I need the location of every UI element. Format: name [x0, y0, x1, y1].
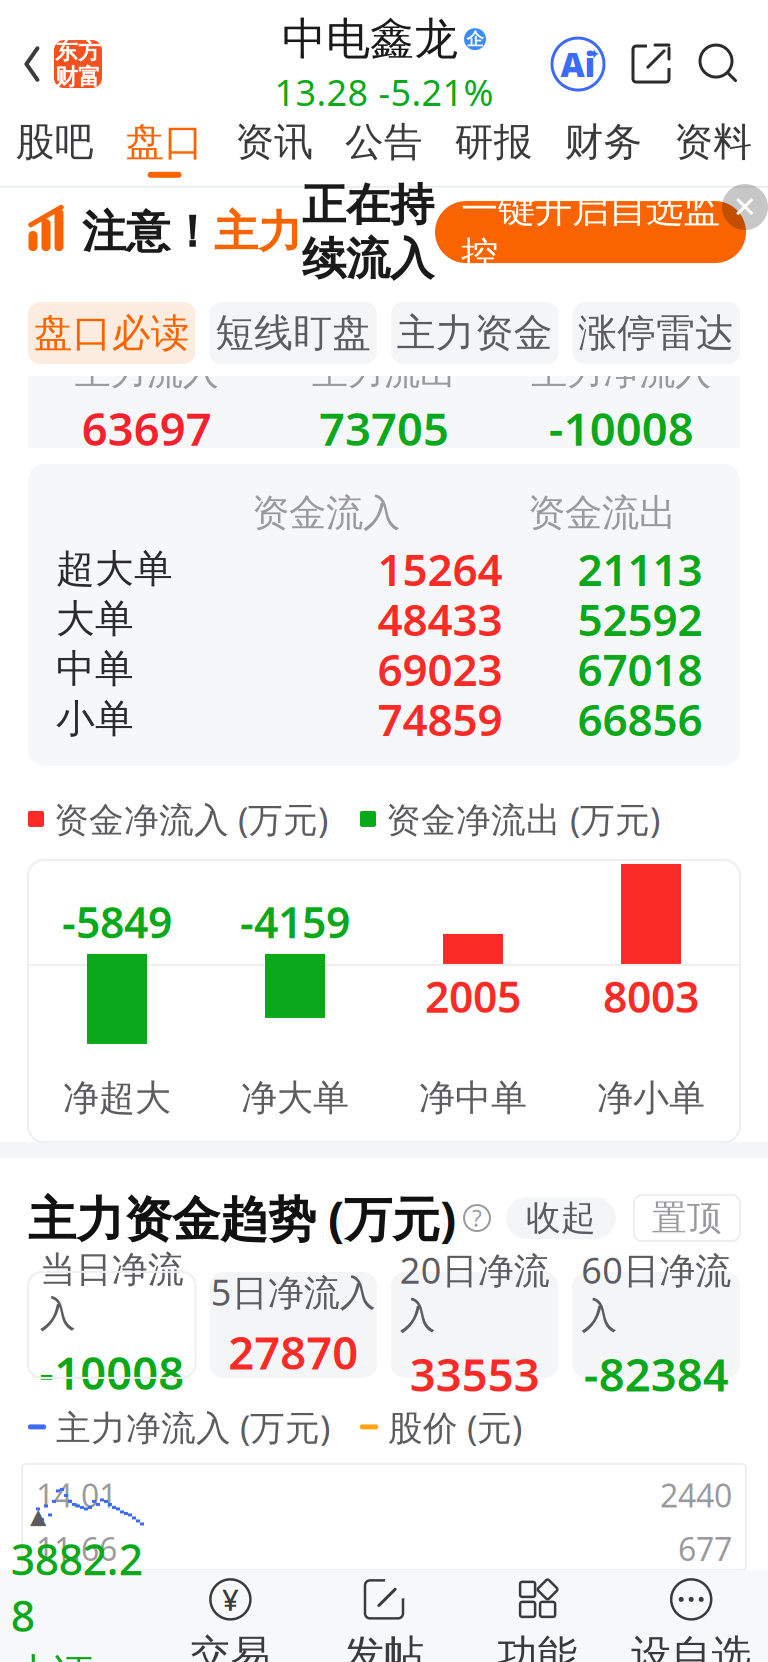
button[interactable]: 财务	[549, 104, 658, 186]
staticText: 27870	[228, 1322, 358, 1382]
staticText: 48433	[377, 590, 502, 648]
staticText: 公告	[345, 118, 423, 166]
staticText: Ai	[560, 42, 595, 86]
staticText: 主力资金趋势 (万元)	[28, 1186, 456, 1250]
staticText: 注意！	[82, 205, 214, 259]
button[interactable]: 说明	[456, 1205, 490, 1231]
staticText: 8003	[603, 968, 699, 1025]
button[interactable]: 设自选	[614, 1576, 768, 1662]
button[interactable]: 当日净流入	[28, 1272, 195, 1378]
staticText: 一键开启自选监控	[461, 186, 720, 278]
button[interactable]: 收起	[506, 1197, 616, 1239]
button[interactable]: 涨停雷达	[572, 302, 740, 364]
staticText: 资金净流出 (万元)	[386, 796, 660, 842]
staticText: 功能	[498, 1630, 578, 1662]
staticText: 14.01	[36, 1474, 117, 1516]
button[interactable]: 5日净流入	[209, 1272, 377, 1378]
staticText: 涨停雷达	[578, 309, 734, 357]
button[interactable]: 返回	[0, 30, 102, 98]
staticText: ¥	[222, 1580, 239, 1619]
staticText: 东方	[55, 37, 101, 65]
button[interactable]: 发帖	[307, 1576, 461, 1662]
staticText: 发帖	[344, 1630, 424, 1662]
staticText: 5日净流入	[211, 1268, 376, 1316]
staticText: 中单	[56, 645, 134, 693]
staticText: 正在持续流入	[302, 178, 434, 286]
button[interactable]: 研报	[439, 104, 549, 186]
button[interactable]: 20日净流入	[391, 1272, 558, 1378]
staticText: -5.21%	[378, 68, 493, 116]
button[interactable]: 分享	[628, 41, 674, 87]
button[interactable]: AI 助手	[550, 36, 606, 92]
button[interactable]: 60日净流入	[572, 1272, 740, 1378]
staticText: 74859	[377, 690, 502, 748]
staticText: 66856	[577, 690, 702, 748]
staticText: 置顶	[652, 1197, 722, 1239]
staticText: ✕	[732, 190, 757, 224]
staticText: 净小单	[597, 1076, 705, 1120]
staticText: 中电鑫龙	[282, 12, 458, 66]
staticText: 短线盯盘	[215, 309, 371, 357]
staticText: 当日净流入	[40, 1248, 184, 1336]
staticText: 超大单	[56, 545, 173, 593]
button[interactable]: 公告	[329, 104, 439, 186]
staticText: 资金流入	[252, 490, 400, 536]
staticText: 60日净流入	[581, 1246, 731, 1338]
staticText: 资料	[674, 118, 752, 166]
button[interactable]: 搜索	[696, 41, 742, 87]
staticText: 设自选	[631, 1630, 751, 1662]
staticText: 盘口必读	[34, 309, 190, 357]
button[interactable]: ¥	[154, 1576, 307, 1662]
staticText: 73705	[319, 398, 449, 458]
staticText: 财富	[55, 63, 101, 91]
button[interactable]: 主力资金	[391, 302, 558, 364]
staticText: 主力	[214, 205, 302, 259]
staticText: 资讯	[235, 118, 313, 166]
staticText: -10008	[549, 398, 694, 458]
staticText: 52592	[577, 590, 702, 648]
staticText: 财务	[564, 118, 642, 166]
staticText: 15264	[377, 540, 502, 598]
button[interactable]: 短线盯盘	[209, 302, 377, 364]
staticText: 33553	[410, 1344, 540, 1404]
button[interactable]: 关闭广告	[722, 184, 768, 230]
button[interactable]: 股吧	[0, 104, 110, 186]
button[interactable]: 资料	[658, 104, 768, 186]
button[interactable]: 功能	[461, 1576, 614, 1662]
staticText: 交易	[190, 1630, 270, 1662]
staticText: 大单	[56, 595, 134, 643]
staticText: 净中单	[419, 1076, 527, 1120]
staticText: 资金流出	[528, 490, 676, 536]
button[interactable]: 盘口必读	[28, 302, 195, 364]
staticText: 主力流入	[75, 350, 219, 394]
staticText: 2005	[425, 968, 521, 1025]
staticText: 63697	[82, 398, 212, 458]
staticText: 3882.28	[11, 1530, 143, 1644]
staticText: 小单	[56, 695, 134, 743]
staticText: 股价 (元)	[388, 1404, 522, 1450]
staticText: ▲	[30, 1504, 46, 1528]
staticText: ✦	[588, 46, 600, 62]
staticText: 67018	[577, 640, 702, 698]
staticText: 677	[678, 1527, 732, 1570]
staticText: -82384	[584, 1344, 729, 1404]
staticText: 收起	[526, 1197, 596, 1239]
staticText: 净大单	[241, 1076, 349, 1120]
staticText: ?	[472, 1203, 482, 1233]
button[interactable]: 盘口	[110, 104, 219, 186]
staticText: 研报	[455, 118, 533, 166]
staticText: 上证 -0.38%	[14, 1646, 140, 1662]
button[interactable]: 置顶	[634, 1195, 740, 1241]
staticText: 主力净流入 (万元)	[56, 1404, 330, 1450]
staticText: 主力流出	[312, 350, 456, 394]
staticText: 资金净流入 (万元)	[54, 796, 328, 842]
button[interactable]: 资讯	[219, 104, 329, 186]
staticText: 21113	[577, 540, 702, 598]
staticText: 20日净流入	[400, 1246, 550, 1338]
staticText: 69023	[377, 640, 502, 698]
button[interactable]: ▲	[0, 1504, 154, 1662]
button[interactable]: 一键开启自选监控	[435, 201, 746, 263]
staticText: 股吧	[16, 118, 94, 166]
